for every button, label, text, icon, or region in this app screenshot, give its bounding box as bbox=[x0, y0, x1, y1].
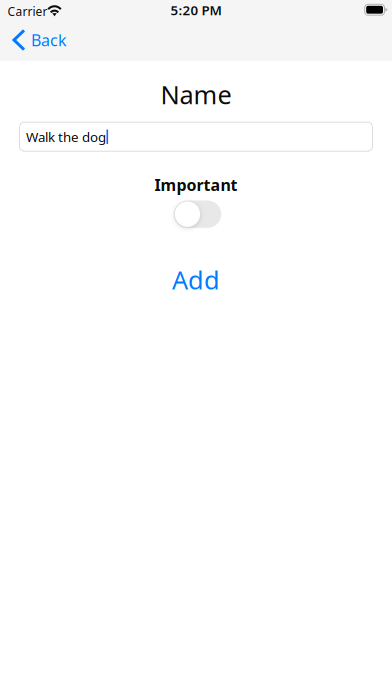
staticText: Important bbox=[154, 174, 237, 195]
button[interactable]: Important bbox=[174, 200, 221, 228]
staticText: 5:20 PM bbox=[170, 1, 221, 19]
staticText: Back bbox=[31, 29, 67, 51]
staticText: Add bbox=[172, 263, 220, 296]
button[interactable]: Add bbox=[148, 257, 244, 302]
button[interactable]: Back bbox=[0, 20, 81, 60]
staticText: Carrier bbox=[7, 3, 47, 19]
staticText: Walk the dog bbox=[26, 128, 106, 146]
staticText: Name bbox=[160, 78, 231, 111]
